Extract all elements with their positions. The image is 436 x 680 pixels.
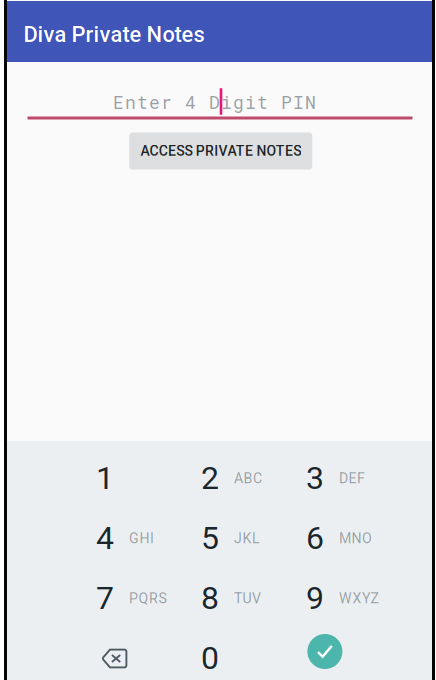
staticText: 7 [96, 579, 114, 617]
button[interactable]: 2 [0, 0, 105, 60]
staticText: Diva Private Notes [23, 22, 204, 47]
button[interactable]: 9 [0, 0, 105, 60]
button[interactable]: 8 [0, 0, 105, 60]
button[interactable]: 7 [0, 0, 105, 60]
staticText: ACCESS PRIVATE NOTES [140, 143, 301, 159]
staticText: 8 [201, 579, 219, 617]
staticText: TUV [234, 590, 261, 607]
staticText: WXYZ [339, 590, 378, 607]
staticText: 2 [201, 459, 219, 497]
button[interactable]: Done [0, 0, 105, 60]
staticText: 6 [306, 519, 324, 557]
button[interactable]: Backspace [0, 0, 105, 60]
button[interactable]: 1 [0, 0, 105, 60]
button[interactable]: 5 [0, 0, 105, 60]
staticText: 9 [306, 579, 324, 617]
button[interactable]: 6 [0, 0, 105, 60]
staticText: DEF [339, 470, 365, 487]
staticText: 0 [201, 639, 219, 677]
staticText: PQRS [129, 590, 166, 607]
staticText: ABC [234, 470, 262, 487]
staticText: 5 [201, 519, 219, 557]
staticText: 3 [306, 459, 324, 497]
button[interactable]: 4 [0, 0, 105, 60]
staticText: Enter 4 Digit PIN [113, 90, 316, 114]
staticText: GHI [129, 530, 154, 547]
button[interactable]: ACCESS PRIVATE NOTES [0, 0, 183, 37]
staticText: MNO [339, 530, 372, 547]
staticText: JKL [234, 530, 260, 547]
staticText: 4 [96, 519, 114, 557]
button[interactable]: 0 [0, 0, 105, 60]
button[interactable]: 3 [0, 0, 105, 60]
staticText: 1 [96, 459, 114, 497]
